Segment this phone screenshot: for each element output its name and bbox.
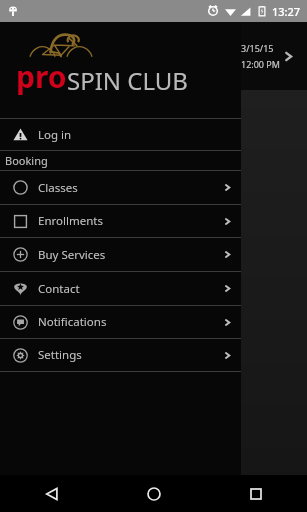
staticText: 13:27 <box>272 4 301 19</box>
button[interactable]: Back <box>0 475 103 512</box>
button[interactable]: 3/15/15 <box>214 22 307 90</box>
staticText: pro <box>16 56 67 97</box>
staticText: Enrollments <box>38 213 103 229</box>
button[interactable]: Home <box>103 475 205 512</box>
staticText: 12:00 PM <box>241 58 280 70</box>
button[interactable]: Enrollments <box>0 205 241 237</box>
staticText: Log in <box>38 127 72 143</box>
staticText: 3/15/15 <box>241 42 274 54</box>
button[interactable]: Buy Services <box>0 238 241 271</box>
staticText: Contact <box>38 281 80 297</box>
staticText: Classes <box>38 180 78 196</box>
button[interactable]: Settings <box>0 339 241 371</box>
button[interactable]: Contact <box>0 272 241 305</box>
staticText: Notifications <box>38 314 107 330</box>
button[interactable]: Recent apps <box>205 475 307 512</box>
staticText: Buy Services <box>38 247 106 263</box>
staticText: Settings <box>38 347 82 363</box>
staticText: Booking <box>5 153 48 168</box>
button[interactable]: Log in <box>0 119 241 150</box>
button[interactable]: Classes <box>0 171 241 204</box>
staticText: SPIN CLUB <box>67 64 188 97</box>
button[interactable]: Notifications <box>0 306 241 338</box>
